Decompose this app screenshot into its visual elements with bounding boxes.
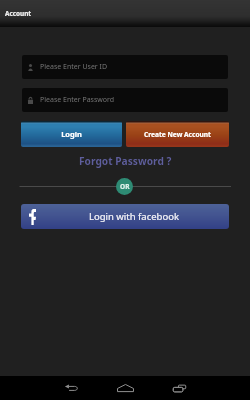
button[interactable]: Back	[59, 376, 83, 400]
button[interactable]: Home	[113, 376, 137, 400]
staticText: OR	[120, 182, 130, 191]
button[interactable]: Forgot Password ?	[0, 152, 250, 170]
staticText: Please Enter User ID	[40, 62, 108, 72]
staticText: Please Enter Password	[40, 95, 115, 105]
button[interactable]: OR	[116, 178, 133, 195]
button[interactable]: Login with facebook	[21, 204, 229, 229]
staticText: Login	[61, 129, 82, 139]
staticText: Forgot Password ?	[79, 154, 172, 168]
staticText: Login with facebook	[89, 210, 179, 223]
button[interactable]: Login	[21, 121, 122, 147]
staticText: Account	[5, 9, 32, 18]
button[interactable]: Please Enter Password	[22, 88, 228, 112]
button[interactable]: Please Enter User ID	[22, 55, 228, 79]
staticText: Create New Account	[144, 130, 211, 139]
button[interactable]: Create New Account	[126, 121, 229, 147]
button[interactable]: Recent apps	[167, 376, 191, 400]
